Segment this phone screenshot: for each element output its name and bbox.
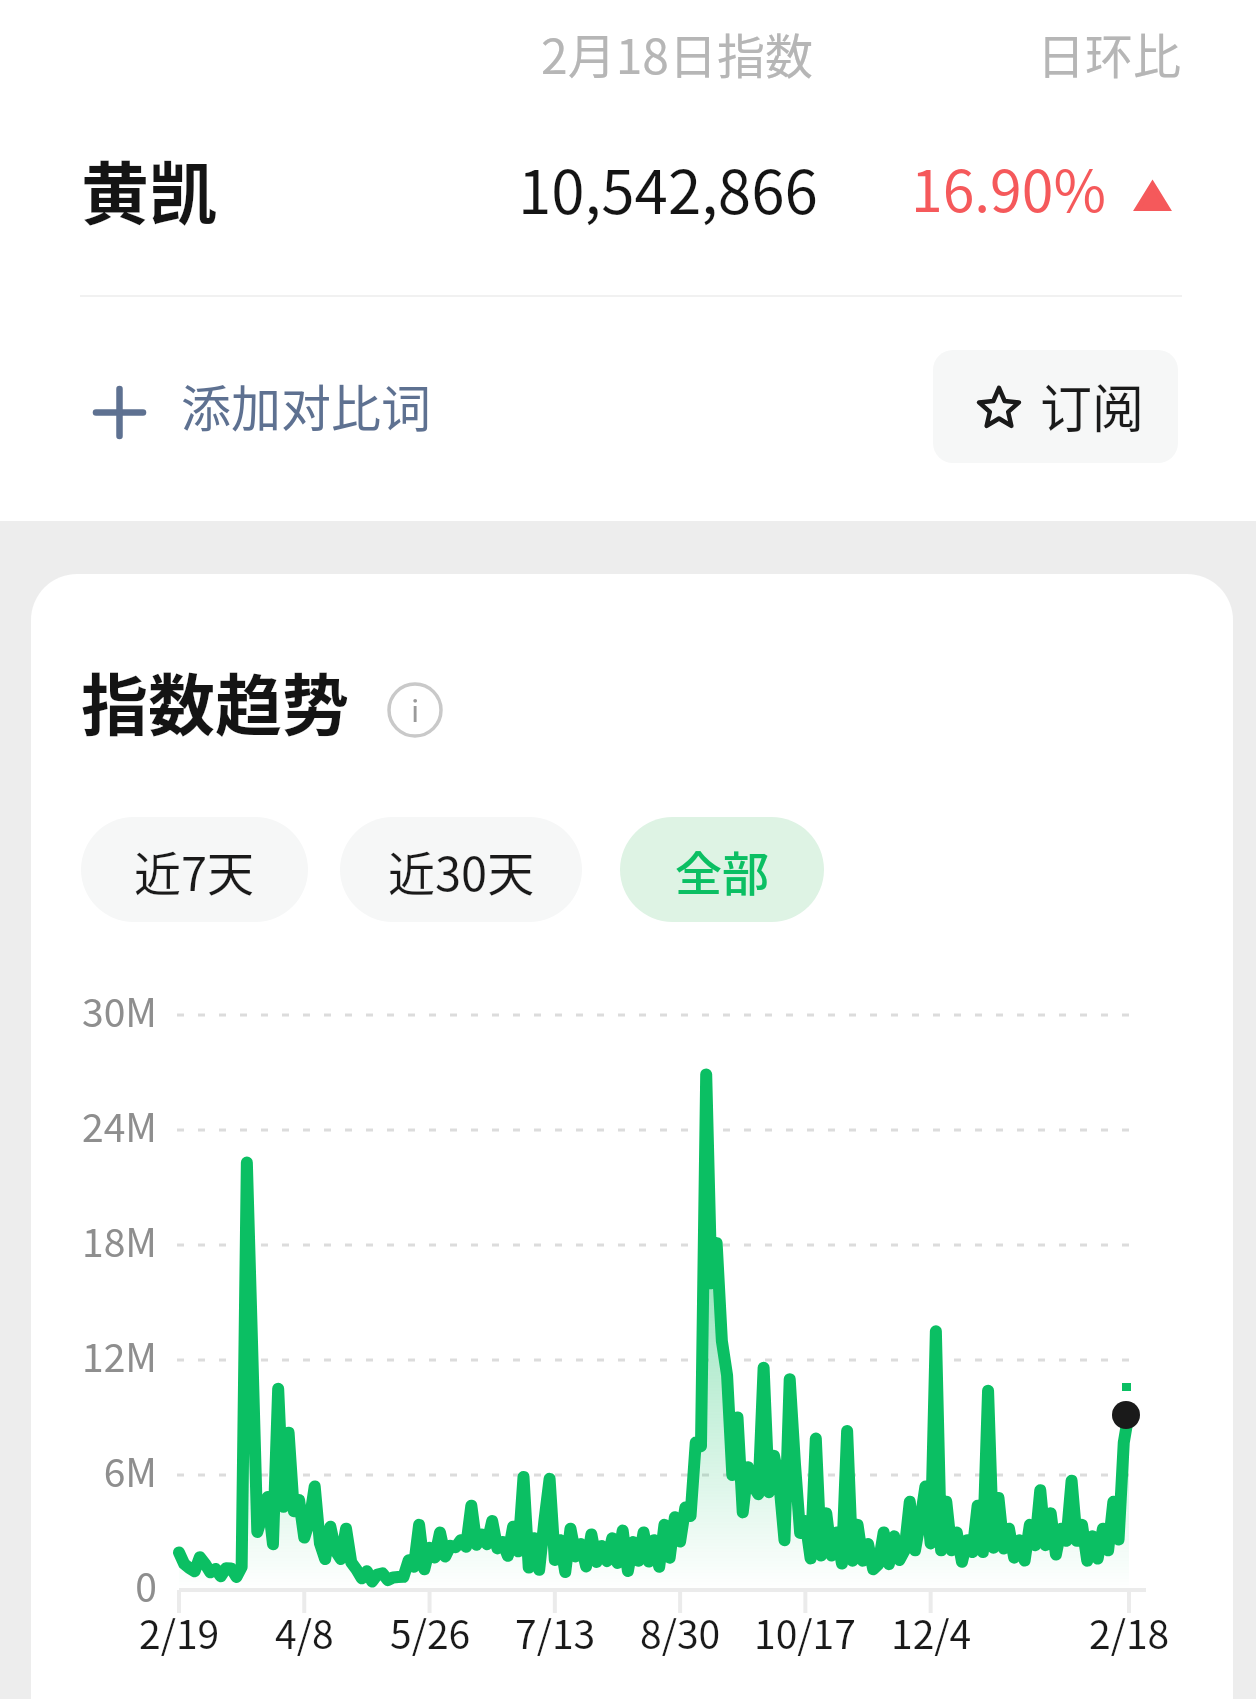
button[interactable]: 全部 [620,817,824,922]
staticText: 8/30 [640,1604,721,1660]
staticText: 5/26 [390,1604,471,1660]
staticText: 近30天 [388,836,535,904]
button[interactable]: 订阅 [933,350,1178,463]
button[interactable]: Info [387,682,443,738]
staticText: 黄凯 [81,140,218,238]
staticText: 全部 [675,836,769,904]
staticText: 12/4 [891,1604,972,1660]
staticText: 0 [36,1557,157,1613]
staticText: 12M [36,1327,157,1383]
button[interactable]: 近30天 [340,817,582,922]
button[interactable]: 近7天 [81,817,308,922]
staticText: 指数趋势 [81,652,349,749]
staticText: 近7天 [134,836,255,904]
button[interactable]: 添加对比词 [96,357,431,467]
staticText: 2/19 [139,1604,220,1660]
staticText: 6M [36,1442,157,1498]
staticText: 4/8 [275,1604,334,1660]
staticText: 30M [36,982,157,1038]
staticText: 7/13 [515,1604,596,1660]
staticText: 10,542,866 [518,144,818,231]
staticText: 订阅 [1040,368,1145,443]
staticText: 16.90% [911,146,1106,229]
staticText: 日环比 [1037,18,1182,88]
staticText: 24M [36,1097,157,1153]
staticText: 10/17 [754,1604,856,1660]
staticText: 添加对比词 [181,369,431,441]
staticText: i [411,687,420,730]
staticText: 2月18日指数 [541,18,813,88]
staticText: 2/18 [1089,1604,1170,1660]
staticText: 18M [36,1212,157,1268]
